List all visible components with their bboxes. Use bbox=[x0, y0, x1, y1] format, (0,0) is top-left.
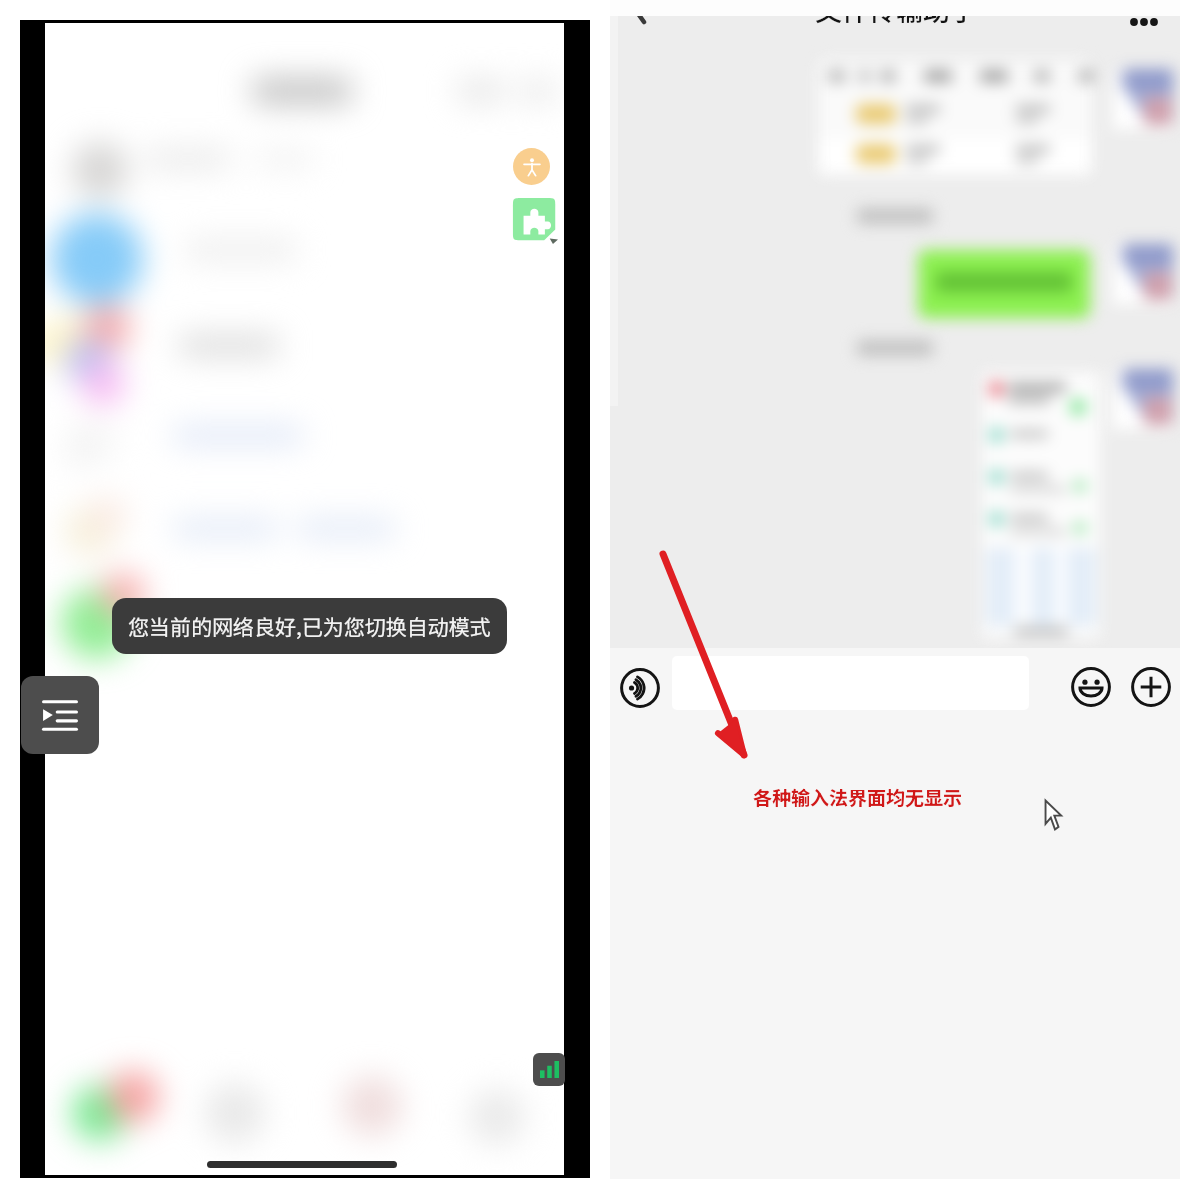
button[interactable]: Playlist bbox=[21, 676, 99, 754]
button[interactable]: Screenshot message bbox=[982, 372, 1100, 638]
button[interactable] bbox=[672, 656, 1029, 710]
button[interactable]: 您当前的网络良好,已为您切换自动模式 bbox=[112, 598, 507, 654]
staticText: 您当前的网络良好,已为您切换自动模式 bbox=[128, 611, 491, 641]
button[interactable]: Plugin bbox=[512, 198, 558, 243]
button[interactable]: Me bbox=[434, 1063, 564, 1159]
button[interactable]: Discover bbox=[304, 1063, 434, 1159]
button[interactable]: Contacts bbox=[174, 1063, 304, 1159]
button[interactable]: Emoji bbox=[1069, 665, 1113, 709]
staticText: 文件传输助手 bbox=[815, 0, 977, 29]
staticText: 各种输入法界面均无显示 bbox=[753, 783, 963, 811]
button[interactable]: More functions bbox=[1129, 665, 1173, 709]
button[interactable]: Network signal bbox=[533, 1053, 565, 1086]
button[interactable]: 各种输入法界面均无显示 bbox=[753, 783, 963, 811]
button[interactable]: Sent message bbox=[918, 250, 1090, 318]
button[interactable]: Back bbox=[610, 0, 656, 40]
button[interactable]: 文件传输助手 bbox=[815, 0, 977, 29]
button[interactable]: Chats bbox=[45, 1063, 174, 1159]
button[interactable]: Voice input bbox=[618, 666, 662, 710]
button[interactable]: More options bbox=[1122, 0, 1168, 46]
button[interactable]: Accessibility bbox=[513, 148, 550, 185]
button[interactable]: Spreadsheet message bbox=[818, 60, 1092, 175]
